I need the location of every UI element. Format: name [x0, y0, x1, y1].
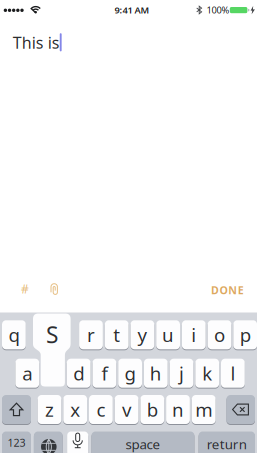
staticText: space — [125, 435, 160, 453]
staticText: n — [172, 397, 184, 422]
staticText: h — [150, 361, 162, 386]
button[interactable]: y — [130, 320, 154, 349]
button[interactable]: return — [199, 431, 255, 453]
button[interactable]: t — [105, 320, 129, 349]
button[interactable]: o — [208, 320, 231, 349]
staticText: o — [214, 322, 225, 347]
staticText: # — [21, 281, 29, 297]
button[interactable]: g — [118, 359, 142, 388]
staticText: j — [179, 361, 184, 386]
button[interactable]: j — [170, 359, 193, 388]
staticText: 9:41 AM — [114, 4, 149, 16]
button[interactable]: u — [156, 320, 180, 349]
button[interactable]: Dictate — [67, 431, 88, 453]
staticText: k — [202, 361, 212, 386]
button[interactable]: f — [92, 359, 116, 388]
staticText: l — [230, 361, 235, 386]
button[interactable]: k — [195, 359, 219, 388]
staticText: c — [96, 397, 105, 422]
button[interactable]: Shift — [2, 395, 31, 424]
staticText: b — [147, 397, 158, 422]
button[interactable]: p — [233, 320, 257, 349]
staticText: 123 — [7, 435, 25, 450]
button[interactable]: c — [89, 395, 113, 424]
button[interactable]: x — [63, 395, 87, 424]
button[interactable]: Insert tag — [15, 280, 35, 298]
button[interactable]: Delete — [226, 395, 255, 424]
staticText: p — [240, 322, 251, 347]
button[interactable]: l — [221, 359, 245, 388]
staticText: f — [101, 361, 107, 386]
button[interactable]: b — [140, 395, 164, 424]
button[interactable]: i — [182, 320, 206, 349]
button[interactable]: space — [91, 431, 194, 453]
button[interactable]: h — [144, 359, 168, 388]
staticText: g — [125, 361, 136, 386]
button[interactable]: Numbers — [2, 431, 31, 453]
button[interactable]: a — [15, 359, 39, 388]
button[interactable]: r — [79, 320, 103, 349]
staticText: q — [8, 322, 19, 347]
button[interactable]: Next keyboard — [34, 431, 63, 453]
staticText: DONE — [211, 283, 244, 297]
button[interactable]: n — [166, 395, 190, 424]
staticText: d — [73, 361, 84, 386]
staticText: 100% — [206, 4, 229, 16]
button[interactable]: v — [115, 395, 138, 424]
staticText: u — [162, 322, 174, 347]
button[interactable]: d — [67, 359, 91, 388]
staticText: t — [113, 322, 120, 347]
button[interactable]: m — [192, 395, 216, 424]
button[interactable]: q — [2, 320, 26, 349]
staticText: i — [191, 322, 196, 347]
staticText: z — [45, 397, 54, 422]
staticText: y — [137, 322, 147, 347]
button[interactable]: Attach file — [44, 280, 64, 298]
staticText: r — [87, 322, 95, 347]
button[interactable]: z — [38, 395, 61, 424]
staticText: return — [207, 435, 247, 453]
staticText: m — [195, 397, 212, 422]
staticText: S — [46, 319, 58, 349]
button[interactable]: Done — [201, 281, 253, 299]
staticText: a — [22, 361, 32, 386]
staticText: v — [122, 397, 131, 422]
staticText: x — [70, 397, 80, 422]
staticText: This is — [13, 32, 60, 53]
